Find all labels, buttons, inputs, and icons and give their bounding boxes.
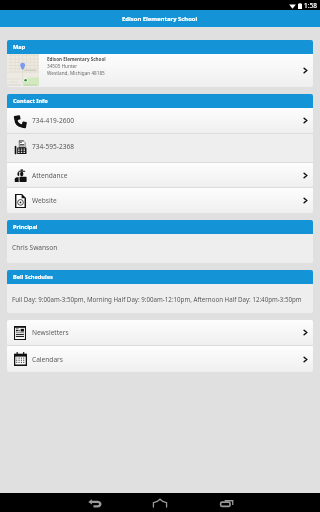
button[interactable]: Newsletters (7, 320, 313, 345)
button[interactable]: Attendance (7, 163, 313, 187)
staticText: 34505 Hunter (47, 63, 78, 69)
staticText: Full Day: 9:00am-3:50pm, Morning Half Da… (12, 295, 302, 303)
staticText: Edison Elementary School (122, 15, 198, 23)
staticText: Newsletters (32, 328, 69, 337)
staticText: Bell Schedules (13, 273, 53, 281)
staticText: Contact Info (13, 97, 48, 105)
staticText: Website (32, 196, 57, 205)
button[interactable]: 734-419-2600 (7, 108, 313, 133)
staticText: 1:58 (304, 1, 317, 10)
staticText: Chris Swanson (12, 243, 58, 252)
button[interactable]: Recent apps (212, 493, 240, 512)
staticText: Map (13, 43, 26, 51)
button[interactable]: Home (146, 493, 174, 512)
button[interactable]: Website (7, 188, 313, 213)
staticText: Attendance (32, 171, 68, 180)
button[interactable]: Edison Elementary School (7, 54, 313, 87)
staticText: Principal (13, 223, 38, 231)
staticText: 734-419-2600 (32, 116, 74, 125)
button[interactable]: Back (80, 493, 108, 512)
staticText: 734-595-2368 (32, 142, 74, 151)
button[interactable]: Calendars (7, 346, 313, 372)
staticText: Edison Elementary School (47, 56, 106, 62)
staticText: Calendars (32, 355, 63, 364)
staticText: Westland, Michigan 48185 (47, 70, 105, 76)
